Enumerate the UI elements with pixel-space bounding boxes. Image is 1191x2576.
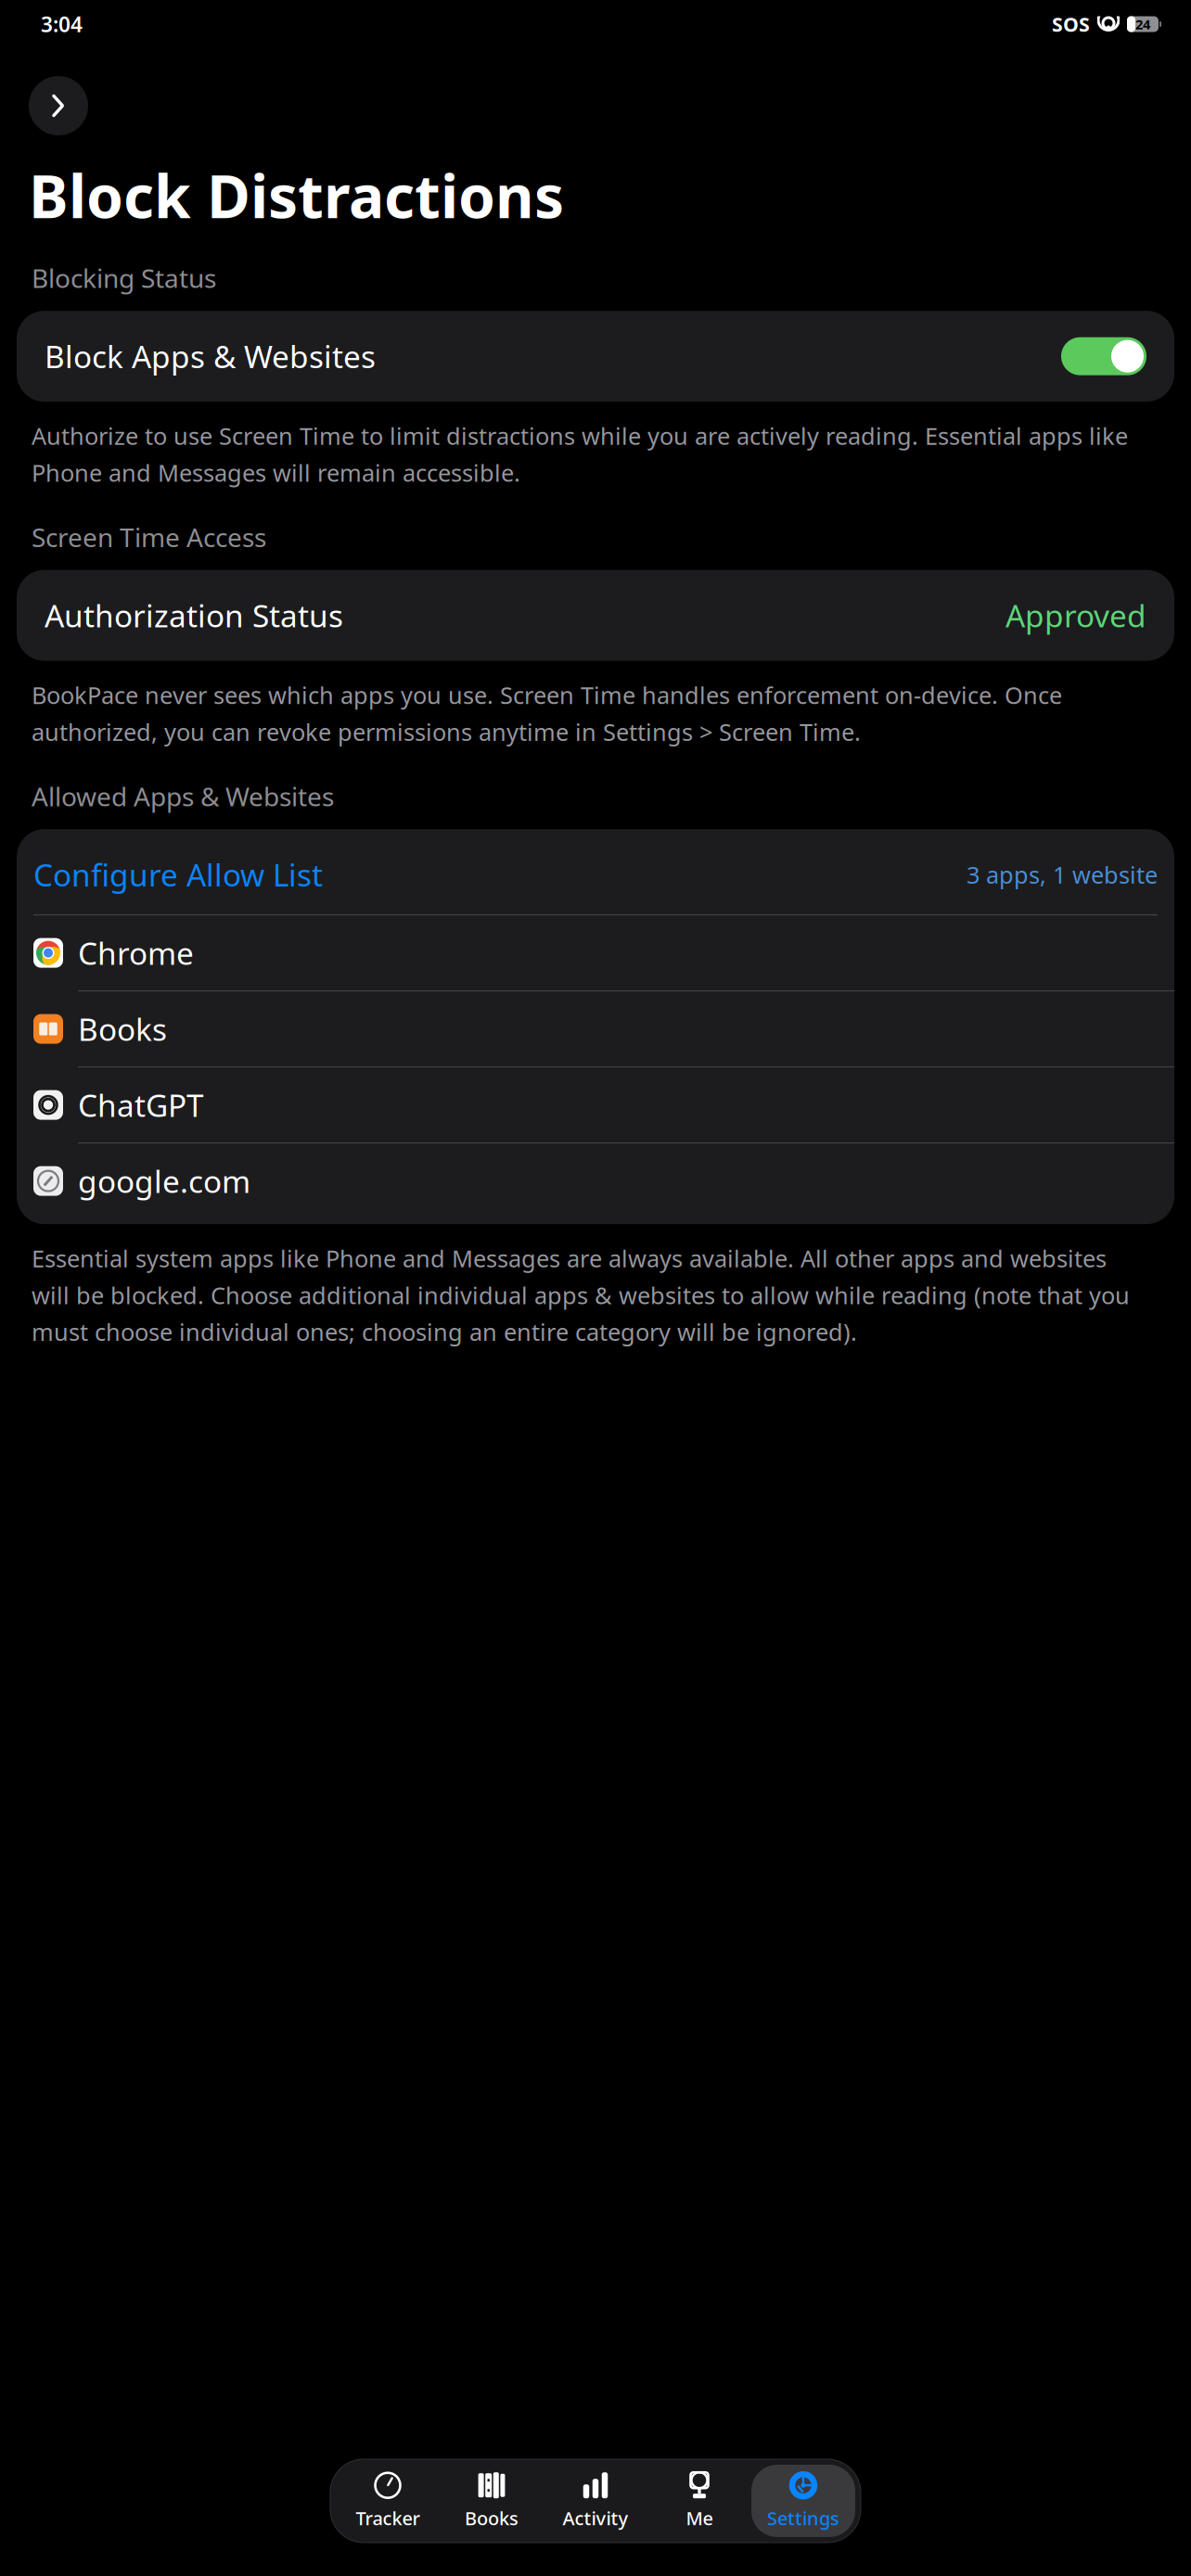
button[interactable]: Chrome — [17, 915, 1174, 991]
staticText: Screen Time Access — [32, 520, 266, 554]
staticText: Approved — [1005, 595, 1146, 636]
staticText: Authorize to use Screen Time to limit di… — [32, 420, 1128, 488]
button[interactable]: Me — [647, 2465, 751, 2537]
button[interactable]: google.com — [17, 1143, 1174, 1219]
staticText: Books — [465, 2506, 519, 2530]
button[interactable]: Back — [29, 76, 88, 135]
staticText: Block Apps & Websites — [45, 336, 376, 377]
staticText: Block Distractions — [29, 156, 564, 235]
button[interactable]: ChatGPT — [17, 1067, 1174, 1143]
button[interactable]: Settings — [751, 2465, 855, 2537]
staticText: 3:04 — [41, 10, 83, 38]
staticText: Configure Allow List — [33, 854, 323, 895]
staticText: Chrome — [78, 932, 194, 973]
button[interactable]: Block Apps and Websites toggle — [1061, 337, 1146, 375]
button[interactable]: Activity — [544, 2465, 647, 2537]
staticText: Authorization Status — [45, 595, 343, 636]
staticText: 24 — [1135, 15, 1150, 33]
staticText: Activity — [563, 2506, 628, 2530]
staticText: ChatGPT — [78, 1084, 204, 1126]
button[interactable]: Books — [440, 2465, 544, 2537]
staticText: google.com — [78, 1160, 250, 1202]
button[interactable]: Authorization Status — [17, 570, 1174, 661]
staticText: Me — [686, 2506, 713, 2530]
button[interactable]: Books — [17, 991, 1174, 1067]
staticText: BookPace never sees which apps you use. … — [32, 679, 1062, 747]
button[interactable]: Configure Allow List — [17, 835, 1174, 914]
staticText: Essential system apps like Phone and Mes… — [32, 1243, 1130, 1347]
staticText: Allowed Apps & Websites — [32, 779, 334, 813]
staticText: Books — [78, 1008, 167, 1050]
staticText: 3 apps, 1 website — [967, 859, 1158, 890]
staticText: SOS — [1052, 11, 1090, 37]
button[interactable]: Tracker — [336, 2465, 440, 2537]
staticText: Blocking Status — [32, 261, 216, 295]
staticText: Settings — [767, 2506, 839, 2530]
staticText: Tracker — [356, 2506, 420, 2530]
